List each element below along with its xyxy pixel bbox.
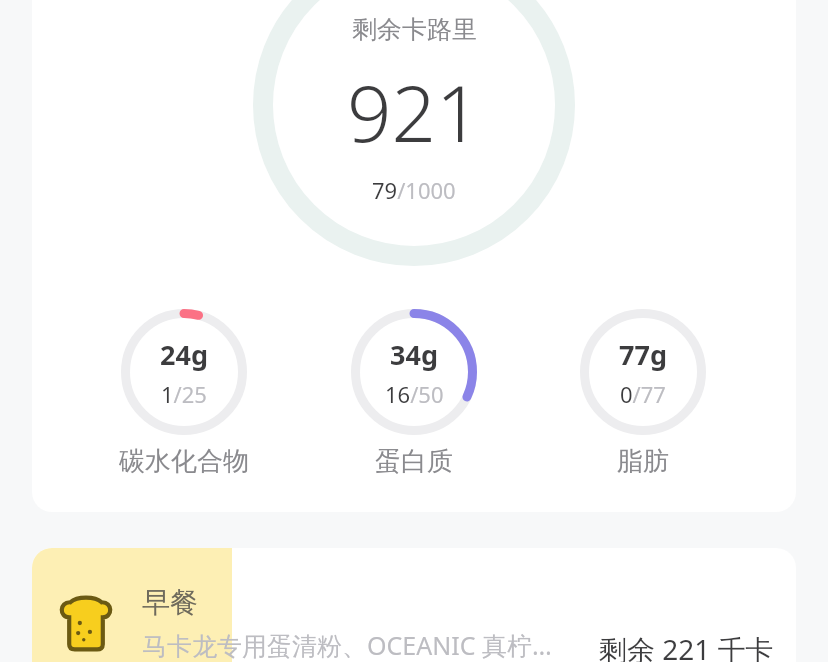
staticText: 79/1000 — [372, 175, 456, 205]
staticText: 1/25 — [161, 379, 207, 409]
staticText: 24g — [160, 336, 208, 373]
staticText: 剩余 221 千卡 — [599, 630, 774, 662]
staticText: 脂肪 — [617, 445, 669, 478]
staticText: 马卡龙专用蛋清粉、OCEANIC 真柠… — [142, 628, 552, 662]
staticText: 碳水化合物 — [119, 445, 249, 478]
other: 早餐 — [58, 595, 114, 651]
button[interactable]: 早餐 — [32, 548, 796, 662]
staticText: 剩余卡路里 — [352, 14, 477, 45]
staticText: 16/50 — [385, 379, 444, 409]
button[interactable] — [32, 0, 796, 512]
staticText: 921 — [347, 59, 481, 165]
staticText: 早餐 — [142, 585, 198, 620]
staticText: 0/77 — [620, 379, 666, 409]
staticText: 77g — [619, 336, 667, 373]
staticText: 34g — [390, 336, 438, 373]
staticText: 蛋白质 — [375, 445, 453, 478]
